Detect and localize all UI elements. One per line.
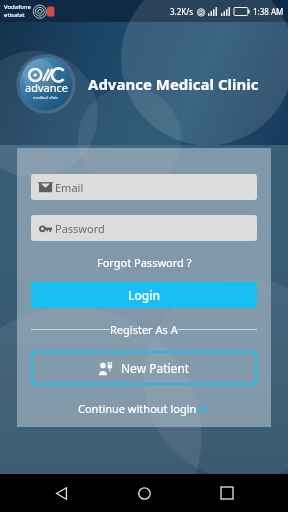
staticText: Email (55, 180, 84, 195)
button[interactable]: Back (39, 474, 83, 512)
button[interactable]: Continue without login (74, 399, 214, 418)
staticText: Forgot Password ? (97, 255, 192, 270)
button[interactable]: Password (31, 215, 257, 241)
staticText: advance (25, 80, 68, 95)
staticText: Continue without login (78, 401, 197, 416)
button[interactable]: Forgot Password ? (91, 253, 198, 272)
staticText: 3.2K/s (170, 6, 194, 17)
button[interactable]: Login (31, 282, 257, 308)
button[interactable]: New Patient (31, 351, 257, 385)
button[interactable]: Home (122, 474, 166, 512)
staticText: Advance Medical Clinic (88, 74, 259, 94)
staticText: Login (128, 287, 160, 303)
button[interactable]: Email (31, 174, 257, 200)
button[interactable]: Recent apps (205, 474, 249, 512)
staticText: Password (55, 221, 105, 236)
staticText: Vodafone (4, 3, 31, 11)
staticText: Register As A (110, 322, 178, 337)
staticText: medical clinic (33, 95, 59, 100)
staticText: etisalat (4, 11, 25, 19)
staticText: >> (197, 401, 210, 416)
staticText: 1:38 AM (253, 6, 284, 17)
staticText: New Patient (121, 360, 190, 376)
